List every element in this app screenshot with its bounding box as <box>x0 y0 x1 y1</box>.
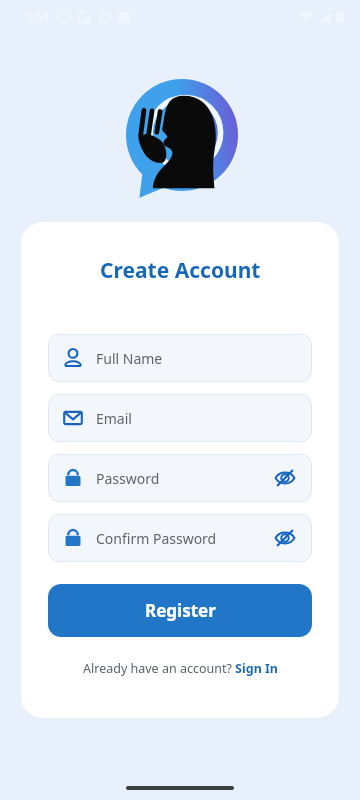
button[interactable]: Show password <box>272 465 298 491</box>
staticText: 1:01 <box>26 9 50 25</box>
button[interactable]: Password <box>48 454 312 502</box>
staticText: Email <box>96 409 132 428</box>
button[interactable]: Register <box>48 584 312 637</box>
button[interactable]: Show password <box>272 525 298 551</box>
button[interactable]: Already have an account? Sign In <box>75 658 286 679</box>
button[interactable]: Full Name <box>48 334 312 382</box>
staticText: Already have an account? Sign In <box>83 660 278 677</box>
staticText: Register <box>145 599 216 622</box>
staticText: Create Account <box>100 256 261 285</box>
button[interactable]: Email <box>48 394 312 442</box>
button[interactable]: Confirm Password <box>48 514 312 562</box>
staticText: Confirm Password <box>96 529 217 548</box>
staticText: Full Name <box>96 349 163 368</box>
staticText: Password <box>96 469 160 488</box>
